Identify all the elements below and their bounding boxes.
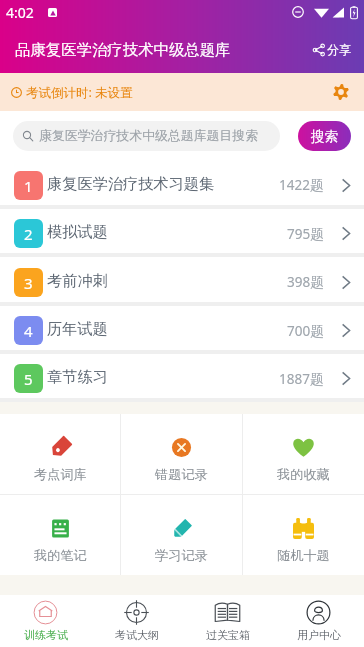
staticText: 我的笔记: [34, 547, 87, 564]
staticText: 700题: [287, 322, 324, 340]
staticText: 4:02: [6, 3, 34, 22]
button[interactable]: 考试大纲: [91, 595, 182, 646]
button[interactable]: 学习记录: [121, 495, 242, 575]
staticText: 训练考试: [24, 628, 68, 642]
staticText: 错题记录: [155, 466, 208, 483]
button[interactable]: 用户中心: [273, 595, 364, 646]
staticText: 我的收藏: [277, 466, 330, 483]
staticText: 考前冲刺: [47, 271, 108, 290]
button[interactable]: 康复医学治疗技术中级总题库题目搜索: [13, 121, 280, 151]
button[interactable]: 1: [0, 160, 364, 205]
staticText: 考试大纲: [115, 628, 159, 642]
button[interactable]: 随机十题: [243, 495, 364, 575]
staticText: 学习记录: [155, 547, 208, 564]
staticText: 模拟试题: [47, 222, 108, 241]
button[interactable]: 过关宝箱: [182, 595, 273, 646]
button[interactable]: 我的笔记: [0, 495, 120, 575]
button[interactable]: 2: [0, 209, 364, 253]
button[interactable]: 分享: [308, 37, 356, 62]
staticText: 康复医学治疗技术中级总题库题目搜索: [39, 128, 259, 144]
staticText: 历年试题: [47, 319, 108, 338]
staticText: 795题: [287, 225, 324, 243]
staticText: 398题: [287, 273, 324, 291]
button[interactable]: 考点词库: [0, 414, 120, 494]
staticText: 章节练习: [47, 367, 108, 386]
staticText: 分享: [327, 42, 351, 57]
staticText: 4: [24, 321, 33, 341]
staticText: 3: [24, 273, 33, 293]
button[interactable]: 我的收藏: [243, 414, 364, 494]
button[interactable]: 5: [0, 354, 364, 398]
staticText: 考点词库: [34, 466, 87, 483]
staticText: 随机十题: [277, 547, 330, 564]
button[interactable]: 搜索: [298, 121, 351, 151]
button[interactable]: 3: [0, 257, 364, 302]
button[interactable]: 错题记录: [121, 414, 242, 494]
staticText: 5: [24, 369, 33, 389]
staticText: 1: [24, 176, 33, 196]
staticText: 1422题: [279, 176, 324, 194]
button[interactable]: 4: [0, 306, 364, 350]
staticText: 康复医学治疗技术习题集: [47, 174, 215, 193]
staticText: 1887题: [279, 370, 324, 388]
staticText: 搜索: [311, 128, 338, 145]
staticText: 过关宝箱: [206, 628, 250, 642]
staticText: 考试倒计时: 未设置: [26, 84, 133, 101]
staticText: 品康复医学治疗技术中级总题库: [15, 40, 231, 59]
button[interactable]: 训练考试: [0, 595, 91, 646]
button[interactable]: Countdown settings: [328, 79, 354, 105]
staticText: 2: [24, 224, 33, 244]
staticText: 用户中心: [297, 628, 341, 642]
